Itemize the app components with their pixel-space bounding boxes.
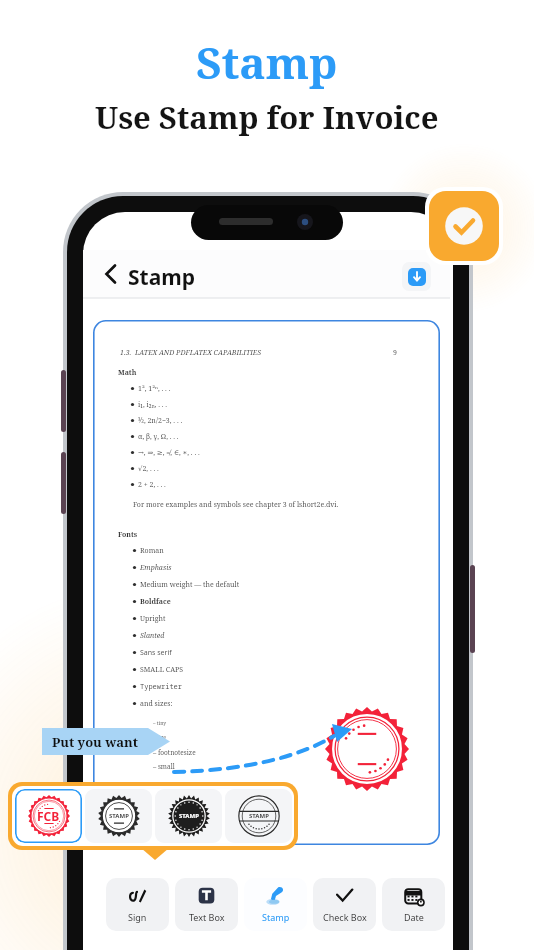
staticText: 2 + 2, . . . xyxy=(138,480,166,490)
button[interactable]: Stamp style 3 xyxy=(155,789,222,843)
staticText: and sizes: xyxy=(140,699,173,709)
staticText: – footnotesize xyxy=(153,748,196,757)
staticText: STAMP xyxy=(179,812,199,820)
staticText: – tiny xyxy=(153,720,167,727)
staticText: i₁, i₂ₙ, . . . xyxy=(138,400,168,410)
button[interactable]: Back xyxy=(95,258,127,290)
staticText: Boldface xyxy=(140,597,171,607)
staticText: Emphasis xyxy=(140,563,172,573)
staticText: – small xyxy=(153,762,175,771)
staticText: FCB xyxy=(37,808,60,824)
staticText: Medium weight — the default xyxy=(140,580,240,590)
staticText: 9 xyxy=(393,348,397,358)
staticText: Typewriter xyxy=(140,682,182,692)
staticText: 1², 1²ⁿ, . . . xyxy=(138,384,171,394)
button[interactable]: Date xyxy=(382,878,445,931)
staticText: Stamp xyxy=(128,263,196,292)
button[interactable]: Text Box xyxy=(175,878,238,931)
staticText: Upright xyxy=(140,614,166,624)
staticText: →, ⇒, ≥, ≠, ∈, ∗, . . . xyxy=(138,448,200,458)
staticText: Put you want xyxy=(52,733,139,751)
staticText: ½, 2n/2−3, . . . xyxy=(138,416,183,426)
staticText: STAMP xyxy=(249,812,269,820)
button[interactable]: Put you want xyxy=(42,728,170,755)
staticText: Fonts xyxy=(118,530,138,540)
button[interactable]: Sign xyxy=(106,878,169,931)
staticText: Slanted xyxy=(140,631,165,641)
staticText: Use Stamp for Invoice xyxy=(95,96,439,138)
button[interactable]: Stamp style 2 xyxy=(85,789,152,843)
staticText: Check Box xyxy=(323,911,367,923)
staticText: Stamp xyxy=(262,911,290,923)
staticText: – size xyxy=(153,734,166,741)
staticText: Roman xyxy=(140,546,164,556)
staticText: For more examples and symbols see chapte… xyxy=(133,500,339,510)
button[interactable]: Stamp xyxy=(244,878,307,931)
staticText: 1.3. LATEX AND PDFLATEX CAPABILITIES xyxy=(120,348,261,358)
staticText: STAMP xyxy=(109,812,129,820)
staticText: Stamp xyxy=(196,32,338,92)
button[interactable]: Stamp style 4 xyxy=(225,789,292,843)
staticText: SMALL CAPS xyxy=(140,665,184,675)
button[interactable]: Selected xyxy=(424,186,504,266)
button[interactable]: Download xyxy=(402,262,431,291)
button[interactable]: Check Box xyxy=(313,878,376,931)
staticText: Sign xyxy=(128,911,147,923)
staticText: Text Box xyxy=(189,911,225,923)
staticText: √2, . . . xyxy=(138,464,159,474)
staticText: Date xyxy=(404,911,424,923)
staticText: Sans serif xyxy=(140,648,172,658)
button[interactable]: Stamp style 1 xyxy=(15,789,82,843)
staticText: Math xyxy=(118,368,137,378)
staticText: α, β, γ, Ω, . . . xyxy=(138,432,179,442)
